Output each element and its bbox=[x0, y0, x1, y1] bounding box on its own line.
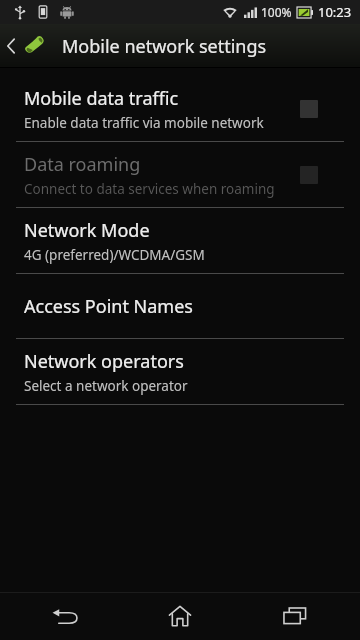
staticText: Connect to data services when roaming bbox=[24, 180, 275, 198]
button[interactable]: Mobile data traffic bbox=[0, 76, 360, 141]
staticText: Data roaming bbox=[24, 152, 141, 177]
button[interactable]: Back bbox=[15, 592, 115, 640]
staticText: 4G (preferred)/WCDMA/GSM bbox=[24, 246, 205, 264]
staticText: Mobile data traffic bbox=[24, 86, 179, 111]
button[interactable]: Home bbox=[130, 592, 230, 640]
staticText: Access Point Names bbox=[24, 294, 193, 319]
button[interactable]: Recent apps bbox=[245, 592, 345, 640]
staticText: 10:23 bbox=[318, 3, 352, 21]
staticText: Enable data traffic via mobile network bbox=[24, 114, 264, 132]
staticText: Select a network operator bbox=[24, 377, 188, 395]
staticText: Network Mode bbox=[24, 218, 150, 243]
button[interactable]: Network Mode bbox=[0, 208, 360, 273]
button[interactable]: Network operators bbox=[0, 339, 360, 404]
button[interactable]: Up, Mobile network settings bbox=[0, 32, 360, 60]
button[interactable]: Data roaming bbox=[0, 142, 360, 207]
button[interactable]: Access Point Names bbox=[0, 274, 360, 338]
staticText: Mobile network settings bbox=[62, 34, 267, 59]
staticText: 100% bbox=[261, 4, 292, 20]
staticText: Network operators bbox=[24, 349, 184, 374]
